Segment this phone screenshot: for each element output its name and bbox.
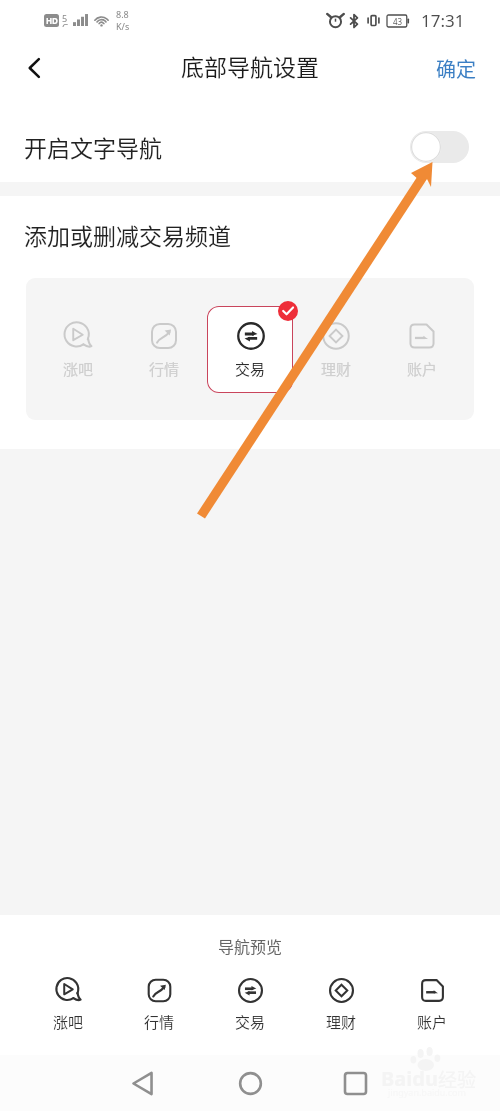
button[interactable]: 交易 xyxy=(212,974,288,1036)
staticText: 理财 xyxy=(326,1011,357,1033)
staticText: 行情 xyxy=(144,1011,175,1033)
button[interactable]: 涨吧 xyxy=(38,310,118,388)
button[interactable]: 确定 xyxy=(412,40,500,96)
staticText: 导航预览 xyxy=(0,934,500,957)
button[interactable]: 涨吧 xyxy=(30,974,106,1036)
staticText: HD xyxy=(46,15,58,26)
staticText: 交易 xyxy=(235,1011,266,1033)
button[interactable]: 行情 xyxy=(121,974,197,1036)
button[interactable]: 交易 xyxy=(207,306,293,393)
staticText: 17:31 xyxy=(421,9,465,32)
button[interactable]: 理财 xyxy=(296,310,376,388)
staticText: 确定 xyxy=(436,54,476,82)
staticText: 交易 xyxy=(235,358,266,380)
staticText: 添加或删减交易频道 xyxy=(24,218,231,251)
staticText: 账户 xyxy=(417,1011,448,1033)
button[interactable]: Back xyxy=(116,1057,169,1110)
staticText: 开启文字导航 xyxy=(24,130,162,163)
staticText: 经验 xyxy=(438,1065,477,1093)
staticText: 理财 xyxy=(321,358,352,380)
staticText: 行情 xyxy=(149,358,180,380)
staticText: 5G xyxy=(62,12,73,27)
staticText: K/s xyxy=(116,20,130,32)
staticText: Baidu xyxy=(381,1065,438,1092)
button[interactable]: Home xyxy=(224,1057,277,1110)
button[interactable]: 账户 xyxy=(394,974,470,1036)
staticText: 涨吧 xyxy=(53,1011,84,1033)
staticText: 涨吧 xyxy=(63,358,94,380)
button[interactable]: 开启文字导航 xyxy=(0,96,500,182)
staticText: 8.8 xyxy=(116,8,129,20)
button[interactable]: Recents xyxy=(329,1057,382,1110)
button[interactable]: 行情 xyxy=(124,310,204,388)
staticText: 账户 xyxy=(407,358,438,380)
button[interactable]: Back xyxy=(12,45,58,91)
button[interactable]: 账户 xyxy=(382,310,462,388)
button[interactable]: Toggle text navigation xyxy=(410,131,469,163)
button[interactable]: 理财 xyxy=(303,974,379,1036)
staticText: 43 xyxy=(393,16,403,27)
staticText: 底部导航设置 xyxy=(181,49,319,82)
